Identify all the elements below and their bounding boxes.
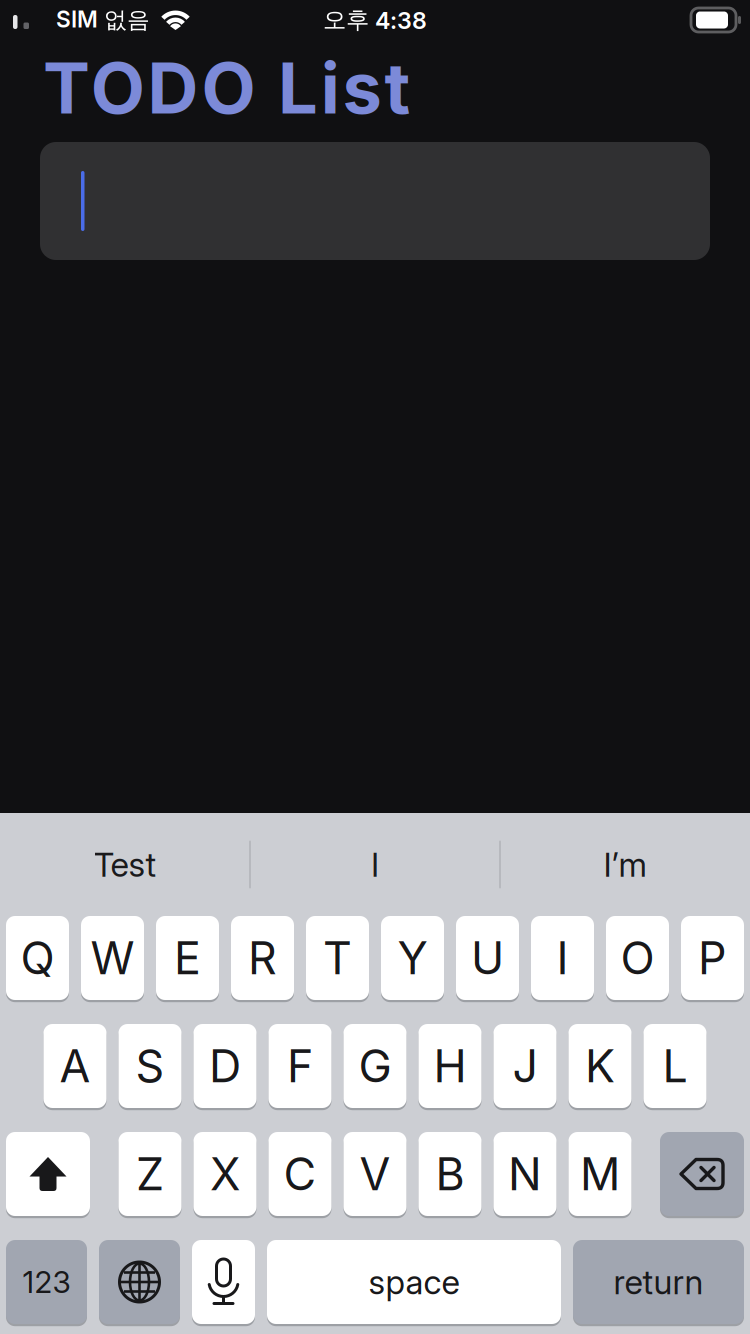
button[interactable]: M — [568, 1132, 631, 1216]
staticText: H — [433, 1039, 466, 1093]
button[interactable]: J — [493, 1024, 556, 1108]
button[interactable]: Shift — [6, 1132, 90, 1216]
button[interactable]: U — [456, 916, 519, 1000]
button[interactable]: Z — [118, 1132, 181, 1216]
button[interactable]: R — [231, 916, 294, 1000]
button[interactable]: I’m — [500, 813, 750, 916]
staticText: T — [323, 931, 352, 985]
staticText: A — [59, 1039, 90, 1093]
staticText: I’m — [603, 844, 646, 885]
staticText: Y — [397, 931, 427, 985]
staticText: W — [90, 931, 134, 985]
staticText: N — [508, 1147, 542, 1201]
button[interactable]: A — [43, 1024, 106, 1108]
button[interactable]: space — [267, 1240, 561, 1324]
button[interactable]: X — [193, 1132, 256, 1216]
staticText: I — [556, 931, 568, 985]
staticText: TODO List — [43, 45, 410, 131]
staticText: Z — [136, 1147, 164, 1201]
button[interactable]: G — [343, 1024, 406, 1108]
button[interactable]: E — [156, 916, 219, 1000]
button[interactable]: D — [193, 1024, 256, 1108]
button[interactable]: return — [573, 1240, 744, 1324]
staticText: R — [248, 931, 277, 985]
button[interactable]: Q — [6, 916, 69, 1000]
staticText: I — [371, 844, 379, 885]
staticText: K — [585, 1039, 615, 1093]
button[interactable]: Todo text field — [40, 142, 710, 260]
staticText: B — [435, 1147, 464, 1201]
staticText: 오후 4:38 — [323, 5, 427, 35]
button[interactable]: V — [343, 1132, 406, 1216]
staticText: space — [368, 1262, 459, 1302]
staticText: SIM 없음 — [56, 6, 150, 34]
button[interactable]: Delete — [660, 1132, 744, 1216]
staticText: L — [662, 1039, 687, 1093]
button[interactable]: S — [118, 1024, 181, 1108]
button[interactable]: O — [606, 916, 669, 1000]
button[interactable]: Next keyboard — [99, 1240, 180, 1324]
button[interactable]: B — [418, 1132, 481, 1216]
button[interactable]: C — [268, 1132, 331, 1216]
staticText: G — [358, 1039, 391, 1093]
staticText: U — [471, 931, 504, 985]
button[interactable]: I — [250, 813, 500, 916]
button[interactable]: K — [568, 1024, 631, 1108]
button[interactable]: T — [306, 916, 369, 1000]
staticText: S — [135, 1039, 164, 1093]
staticText: M — [580, 1147, 620, 1201]
button[interactable]: N — [493, 1132, 556, 1216]
button[interactable]: Test — [0, 813, 250, 916]
staticText: X — [210, 1147, 240, 1201]
staticText: Q — [20, 931, 54, 985]
button[interactable]: F — [268, 1024, 331, 1108]
staticText: 123 — [22, 1264, 70, 1300]
button[interactable]: L — [643, 1024, 706, 1108]
staticText: C — [283, 1147, 316, 1201]
button[interactable]: W — [81, 916, 144, 1000]
staticText: return — [613, 1262, 703, 1302]
staticText: Test — [93, 844, 156, 885]
staticText: J — [512, 1039, 537, 1093]
button[interactable]: Dictate — [192, 1240, 255, 1324]
staticText: V — [359, 1147, 390, 1201]
button[interactable]: I — [531, 916, 594, 1000]
button[interactable]: P — [681, 916, 744, 1000]
button[interactable]: Y — [381, 916, 444, 1000]
staticText: D — [209, 1039, 241, 1093]
button[interactable]: H — [418, 1024, 481, 1108]
staticText: E — [174, 931, 201, 985]
staticText: P — [698, 931, 727, 985]
staticText: F — [287, 1039, 313, 1093]
staticText: O — [620, 931, 654, 985]
button[interactable]: Numbers — [6, 1240, 87, 1324]
